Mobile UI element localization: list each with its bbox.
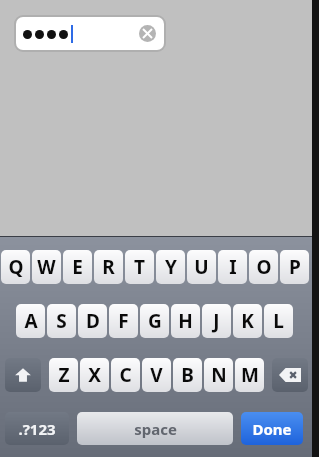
staticText: R — [102, 254, 115, 280]
staticText: B — [181, 362, 194, 388]
staticText: H — [178, 308, 193, 334]
button[interactable]: K — [233, 304, 262, 338]
button[interactable]: E — [63, 250, 92, 284]
staticText: C — [119, 362, 132, 388]
button[interactable]: Z — [49, 358, 78, 392]
button[interactable]: X — [80, 358, 109, 392]
staticText: A — [24, 308, 38, 334]
staticText: .?123 — [18, 419, 56, 439]
button[interactable]: Clear text — [14, 15, 166, 52]
staticText: F — [118, 308, 129, 334]
staticText: G — [148, 308, 162, 334]
button[interactable]: J — [202, 304, 231, 338]
staticText: W — [37, 254, 56, 280]
button[interactable]: C — [111, 358, 140, 392]
button[interactable]: Y — [156, 250, 185, 284]
button[interactable]: Clear text — [139, 25, 156, 42]
button[interactable]: U — [187, 250, 216, 284]
button[interactable]: L — [264, 304, 293, 338]
staticText: S — [56, 308, 67, 334]
staticText: X — [88, 362, 101, 388]
button[interactable]: I — [218, 250, 247, 284]
staticText: space — [134, 419, 177, 439]
button[interactable]: D — [78, 304, 107, 338]
staticText: K — [241, 308, 254, 334]
button[interactable]: P — [280, 250, 309, 284]
button[interactable]: G — [140, 304, 169, 338]
button[interactable]: M — [235, 358, 264, 392]
staticText: I — [229, 254, 237, 280]
button[interactable]: W — [32, 250, 61, 284]
button[interactable]: .?123 — [5, 412, 69, 445]
button[interactable]: H — [171, 304, 200, 338]
button[interactable]: S — [47, 304, 76, 338]
staticText: Q — [8, 254, 24, 280]
button[interactable]: T — [125, 250, 154, 284]
button[interactable]: R — [94, 250, 123, 284]
staticText: T — [134, 254, 145, 280]
button[interactable]: N — [204, 358, 233, 392]
staticText: J — [213, 308, 220, 334]
button[interactable]: Shift — [5, 358, 41, 392]
button[interactable]: Q — [1, 250, 30, 284]
button[interactable]: V — [142, 358, 171, 392]
staticText: U — [194, 254, 209, 280]
button[interactable]: O — [249, 250, 278, 284]
staticText: M — [241, 362, 259, 388]
staticText: D — [86, 308, 100, 334]
button[interactable]: F — [109, 304, 138, 338]
staticText: P — [289, 254, 301, 280]
button[interactable]: Done — [241, 412, 303, 445]
staticText: Z — [58, 362, 70, 388]
button[interactable]: B — [173, 358, 202, 392]
staticText: V — [150, 362, 163, 388]
staticText: N — [211, 362, 227, 388]
staticText: Y — [165, 254, 177, 280]
button[interactable]: A — [16, 304, 45, 338]
staticText: O — [256, 254, 272, 280]
staticText: L — [273, 308, 284, 334]
staticText: E — [72, 254, 83, 280]
button[interactable]: Backspace — [272, 358, 308, 392]
staticText: Done — [252, 419, 292, 439]
button[interactable]: space — [77, 412, 233, 445]
